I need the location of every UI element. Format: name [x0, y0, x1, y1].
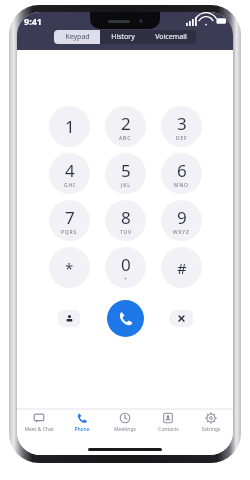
button[interactable]: 4 — [49, 153, 90, 194]
staticText: 7 — [65, 206, 75, 229]
staticText: * — [65, 258, 74, 278]
button[interactable]: Keypad — [54, 30, 100, 44]
staticText: 0 — [121, 253, 131, 276]
staticText: 4 — [65, 159, 75, 182]
staticText: Keypad — [65, 32, 90, 42]
staticText: 2 — [121, 112, 131, 135]
button[interactable]: Call — [107, 300, 144, 337]
button[interactable]: Add contact — [58, 310, 80, 327]
button[interactable]: # — [161, 247, 202, 288]
staticText: History — [111, 32, 135, 42]
button[interactable]: 6 — [161, 153, 202, 194]
button[interactable]: Voicemail — [146, 30, 196, 44]
button[interactable]: 1 — [49, 106, 90, 147]
button[interactable]: 8 — [105, 200, 146, 241]
button[interactable]: 7 — [49, 200, 90, 241]
staticText: # — [177, 258, 187, 278]
staticText: WXYZ — [173, 229, 190, 236]
button[interactable]: Delete — [169, 310, 193, 327]
staticText: 3 — [177, 112, 187, 135]
button[interactable]: Phone — [61, 412, 103, 443]
button[interactable]: Contacts — [147, 412, 189, 443]
staticText: MNO — [174, 182, 189, 189]
staticText: 1 — [65, 115, 75, 138]
staticText: 5 — [121, 159, 131, 182]
staticText: Contacts — [158, 426, 179, 433]
staticText: 9:41 — [24, 15, 42, 27]
button[interactable]: 0 — [105, 247, 146, 288]
button[interactable]: Meet & Chat — [18, 412, 60, 443]
staticText: PQRS — [61, 229, 78, 236]
button[interactable]: 3 — [161, 106, 202, 147]
staticText: ABC — [119, 135, 132, 142]
staticText: + — [124, 276, 128, 283]
staticText: 9 — [177, 206, 187, 229]
staticText: GHI — [64, 182, 76, 189]
button[interactable]: 5 — [105, 153, 146, 194]
staticText: DEF — [176, 135, 188, 142]
staticText: Meet & Chat — [24, 426, 54, 433]
staticText: 6 — [177, 159, 187, 182]
staticText: JKL — [121, 182, 131, 189]
staticText: Voicemail — [155, 32, 187, 42]
button[interactable]: Settings — [190, 412, 232, 443]
staticText: Phone — [74, 426, 90, 433]
button[interactable]: History — [100, 30, 146, 44]
staticText: Meetings — [114, 426, 136, 433]
button[interactable]: 2 — [105, 106, 146, 147]
staticText: 8 — [121, 206, 131, 229]
button[interactable]: 9 — [161, 200, 202, 241]
staticText: Settings — [201, 426, 221, 433]
staticText: TUV — [120, 229, 132, 236]
button[interactable]: Meetings — [104, 412, 146, 443]
button[interactable]: * — [49, 247, 90, 288]
